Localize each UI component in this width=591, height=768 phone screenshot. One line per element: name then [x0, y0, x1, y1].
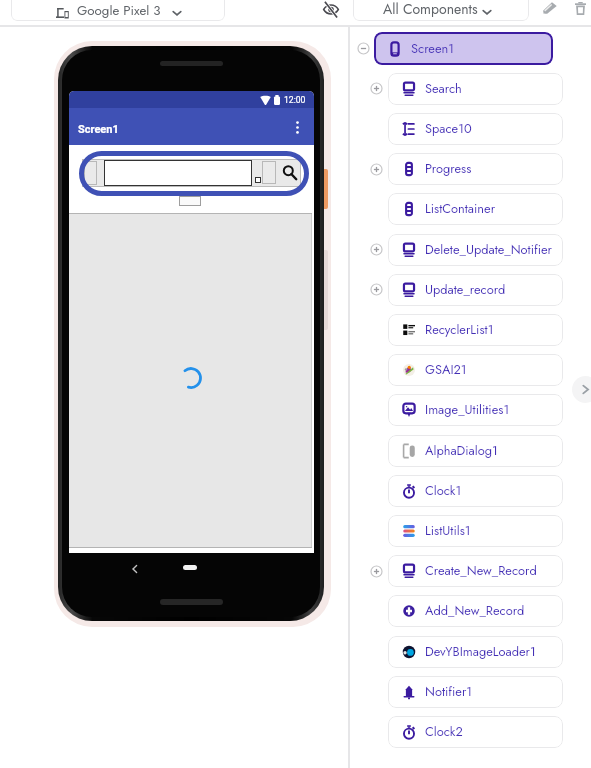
button[interactable]: AlphaDialog1 [388, 435, 563, 467]
staticText: Update_record [425, 280, 506, 298]
button[interactable]: Screen1 [374, 32, 553, 65]
button[interactable]: Create_New_Record [388, 555, 563, 587]
button[interactable]: Hide hidden components [320, 0, 341, 20]
staticText: Delete_Update_Notifier [425, 240, 552, 258]
staticText: Google Pixel 3 [77, 1, 161, 20]
button[interactable] [104, 160, 252, 186]
staticText: Space10 [425, 119, 472, 137]
button[interactable]: Update_record [388, 274, 563, 306]
staticText: 12:00 [284, 95, 306, 105]
button[interactable]: Rename [539, 0, 560, 18]
button[interactable]: Expand panel [572, 376, 591, 403]
button[interactable]: Clock2 [388, 716, 563, 748]
button[interactable]: Collapse Screen1 [357, 42, 370, 55]
staticText: ListUtils1 [425, 521, 471, 539]
button[interactable]: Search [280, 163, 299, 182]
button[interactable]: ListContainer [388, 193, 563, 225]
button[interactable]: DevYBImageLoader1 [388, 636, 563, 668]
staticText: AlphaDialog1 [425, 441, 498, 459]
staticText: Progress [425, 159, 472, 177]
staticText: Create_New_Record [425, 561, 537, 579]
button[interactable]: Search [388, 73, 563, 105]
staticText: Image_Utilities1 [425, 400, 510, 418]
staticText: Screen1 [78, 123, 119, 136]
staticText: Clock1 [425, 481, 462, 499]
button[interactable]: Expand Progress [370, 163, 383, 176]
button[interactable]: GSAI21 [388, 354, 563, 386]
button[interactable]: Delete_Update_Notifier [388, 234, 563, 266]
button[interactable]: Progress [388, 153, 563, 185]
button[interactable]: Expand Search [370, 82, 383, 95]
button[interactable]: Expand Create_New_Record [370, 565, 383, 578]
button[interactable]: Back [129, 563, 141, 575]
staticText: Screen1 [411, 39, 454, 57]
staticText: Add_New_Record [425, 601, 525, 619]
staticText: Notifier1 [425, 682, 473, 700]
button[interactable]: Home [183, 565, 197, 570]
button[interactable]: Clock1 [388, 475, 563, 507]
button[interactable]: Add_New_Record [388, 595, 563, 627]
staticText: GSAI21 [425, 360, 467, 378]
button[interactable]: All Components [353, 0, 529, 21]
staticText: Clock2 [425, 722, 463, 740]
button[interactable] [262, 161, 276, 184]
button[interactable]: More options [289, 119, 306, 136]
button[interactable]: Notifier1 [388, 676, 563, 708]
button[interactable]: Google Pixel 3 [11, 0, 225, 21]
button[interactable] [84, 161, 97, 185]
staticText: DevYBImageLoader1 [425, 642, 536, 660]
button[interactable]: Space10 [388, 113, 563, 145]
staticText: RecyclerList1 [425, 320, 494, 338]
button[interactable]: Delete [570, 0, 591, 19]
staticText: Search [425, 79, 462, 97]
button[interactable]: ListUtils1 [388, 515, 563, 547]
button[interactable]: Expand Delete_Update_Notifier [370, 243, 383, 256]
staticText: ListContainer [425, 199, 496, 217]
button[interactable]: Expand Update_record [370, 283, 383, 296]
button[interactable]: RecyclerList1 [388, 314, 563, 346]
staticText: All Components [383, 0, 478, 19]
button[interactable]: Image_Utilities1 [388, 394, 563, 426]
